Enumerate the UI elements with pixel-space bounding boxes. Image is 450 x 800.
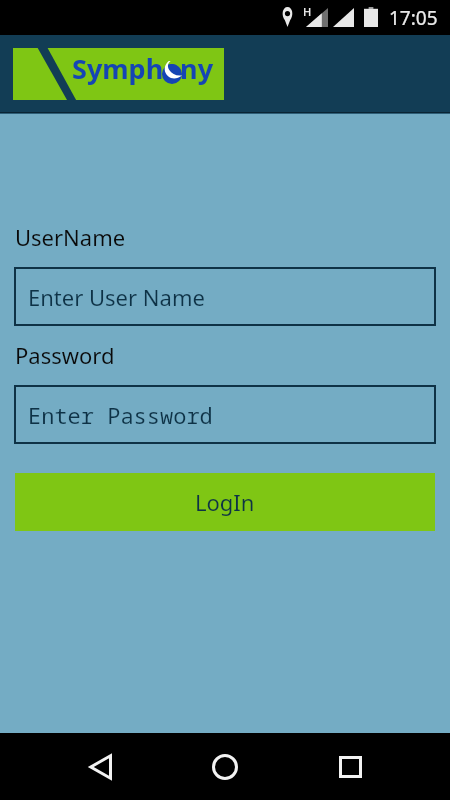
staticText: Enter Password <box>28 400 213 430</box>
staticText: LogIn <box>195 487 255 517</box>
button[interactable]: Enter Password <box>14 385 436 444</box>
staticText: Symphony <box>72 50 214 87</box>
staticText: H <box>303 4 312 19</box>
button[interactable]: Enter User Name <box>14 267 436 326</box>
staticText: UserName <box>15 222 126 252</box>
staticText: Enter User Name <box>28 282 205 312</box>
staticText: Password <box>15 340 115 370</box>
button[interactable]: Recent apps <box>300 733 400 800</box>
button[interactable]: LogIn <box>15 473 435 531</box>
button[interactable]: Home <box>175 733 275 800</box>
button[interactable]: Back <box>50 733 150 800</box>
staticText: 17:05 <box>389 5 438 31</box>
